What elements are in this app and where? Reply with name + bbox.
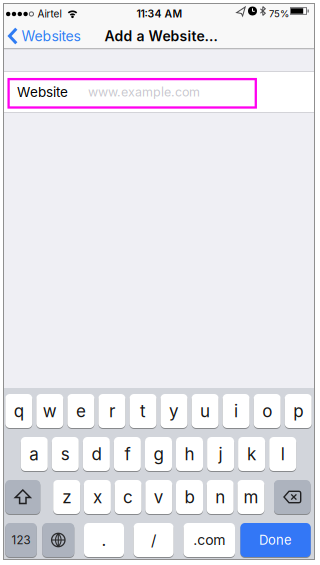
staticText: 11:34 AM [136,7,182,20]
button[interactable]: y [160,394,187,429]
staticText: Airtel [37,8,61,20]
staticText: 75% [269,8,289,20]
button[interactable]: o [254,394,281,429]
button[interactable]: .com [183,523,235,558]
staticText: d [91,444,101,464]
button[interactable]: i [223,394,250,429]
button[interactable] [5,480,40,515]
button[interactable]: u [192,394,219,429]
staticText: z [62,487,71,507]
button[interactable]: z [53,480,80,515]
button[interactable] [274,480,310,515]
button[interactable]: d [83,437,110,472]
button[interactable]: Websites [6,24,84,48]
button[interactable]: f [114,437,141,472]
button[interactable]: . [84,523,124,558]
staticText: n [215,487,225,507]
staticText: r [109,401,115,421]
button[interactable]: m [237,480,264,515]
staticText: .com [193,531,225,548]
button[interactable]: w [36,394,63,429]
staticText: q [14,401,24,421]
button[interactable]: c [115,480,142,515]
button[interactable]: b [176,480,203,515]
staticText: p [293,401,303,421]
staticText: / [151,531,156,549]
staticText: k [247,444,256,464]
button[interactable]: s [52,437,79,472]
staticText: f [124,444,130,464]
staticText: u [200,401,210,421]
button[interactable]: n [207,480,234,515]
staticText: h [184,444,194,464]
button[interactable]: 123 [5,523,37,558]
staticText: e [76,401,86,421]
staticText: Website [17,84,68,100]
staticText: w [43,401,57,421]
staticText: c [123,487,133,507]
staticText: m [243,487,258,507]
button[interactable]: x [84,480,111,515]
button[interactable]: g [145,437,172,472]
staticText: v [154,487,164,507]
button[interactable]: h [176,437,203,472]
button[interactable]: t [129,394,156,429]
button[interactable]: a [21,437,48,472]
button[interactable]: Done [240,523,311,558]
button[interactable]: l [269,437,296,472]
button[interactable]: / [134,523,174,558]
staticText: www.example.com [88,84,200,99]
staticText: a [29,444,39,464]
button[interactable]: r [98,394,125,429]
button[interactable]: v [145,480,172,515]
staticText: x [93,487,102,507]
button[interactable]: k [238,437,265,472]
button[interactable] [42,523,74,558]
staticText: Done [259,532,292,548]
staticText: y [169,401,179,421]
button[interactable]: q [5,394,32,429]
staticText: i [234,401,238,421]
staticText: j [219,444,223,464]
staticText: Websites [21,28,80,45]
button[interactable]: j [207,437,234,472]
staticText: 123 [12,533,31,547]
staticText: b [184,487,194,507]
staticText: g [153,444,163,464]
staticText: s [61,444,70,464]
button[interactable]: e [67,394,94,429]
button[interactable]: Website [4,72,314,112]
staticText: o [262,401,272,421]
staticText: Add a Website… [104,28,217,45]
button[interactable]: p [285,394,312,429]
staticText: . [101,530,106,550]
staticText: l [281,444,285,464]
staticText: t [140,401,146,421]
